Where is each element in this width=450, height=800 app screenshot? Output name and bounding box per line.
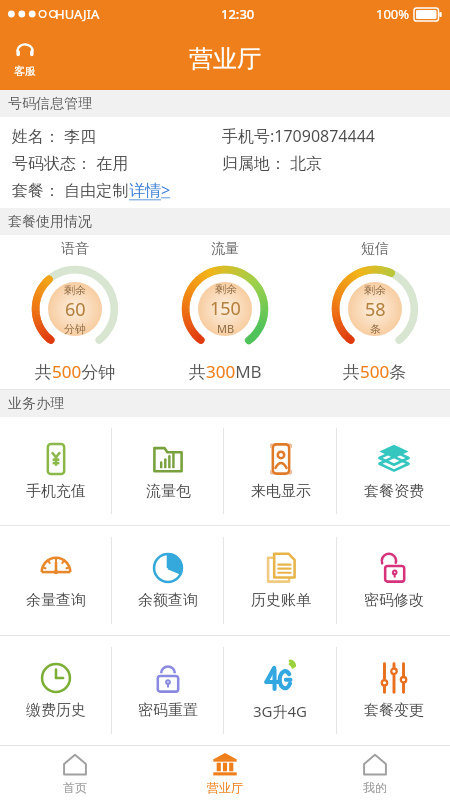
staticText: 来电显示 <box>251 482 311 501</box>
button[interactable]: 详情> <box>129 179 171 201</box>
staticText: 套餐资费 <box>364 482 424 501</box>
staticText: 余额查询 <box>138 591 198 610</box>
button[interactable]: 客服 Customer service <box>8 36 42 82</box>
staticText: 密码重置 <box>138 701 198 720</box>
staticText: 套餐变更 <box>364 701 424 720</box>
staticText: 营业厅 <box>207 780 243 795</box>
staticText: 流量 <box>211 240 239 258</box>
staticText: 号码信息管理 <box>8 95 92 113</box>
staticText: 语音 <box>61 240 89 258</box>
staticText: 分钟 <box>64 322 86 336</box>
staticText: 套餐使用情况 <box>8 213 92 231</box>
staticText: 100% <box>376 5 410 23</box>
staticText: 首页 <box>63 780 87 795</box>
button[interactable]: 首页 <box>0 746 150 800</box>
button[interactable]: 流量 <box>150 240 300 383</box>
button[interactable]: 密码重置 <box>112 636 224 745</box>
button[interactable]: 密码修改 <box>337 526 450 635</box>
staticText: 套餐： 自由定制 <box>12 179 129 201</box>
button[interactable]: 流量包 <box>112 417 224 525</box>
staticText: 流量包 <box>146 482 191 501</box>
staticText: 历史账单 <box>251 591 311 610</box>
staticText: 共300MB <box>189 360 262 383</box>
staticText: 客服 <box>14 64 36 78</box>
button[interactable]: 套餐资费 <box>337 417 450 525</box>
staticText: 共500分钟 <box>35 360 116 383</box>
staticText: 150 <box>210 296 241 321</box>
button[interactable]: 手机充值 <box>0 417 112 525</box>
staticText: 条 <box>370 322 381 336</box>
staticText: 60 <box>65 297 86 322</box>
staticText: 58 <box>365 297 386 322</box>
staticText: 手机充值 <box>26 482 86 501</box>
staticText: 业务办理 <box>8 395 64 413</box>
staticText: 3G升4G <box>253 701 308 721</box>
staticText: 余量查询 <box>26 591 86 610</box>
staticText: 剩余 <box>215 282 237 296</box>
button[interactable]: 余量查询 <box>0 526 112 635</box>
button[interactable]: 3G升4G <box>224 636 337 745</box>
button[interactable]: 语音 <box>0 240 150 383</box>
staticText: 详情> <box>129 179 171 201</box>
button[interactable]: 余额查询 <box>112 526 224 635</box>
staticText: 号码状态： 在用 <box>12 152 129 174</box>
staticText: 缴费历史 <box>26 701 86 720</box>
staticText: 营业厅 <box>189 44 261 74</box>
staticText: 剩余 <box>364 283 386 297</box>
staticText: 姓名： 李四 <box>12 125 97 147</box>
staticText: 密码修改 <box>364 591 424 610</box>
staticText: 剩余 <box>64 283 86 297</box>
button[interactable]: 营业厅 <box>150 746 300 800</box>
button[interactable]: 历史账单 <box>224 526 337 635</box>
staticText: 短信 <box>361 240 389 258</box>
staticText: 共500条 <box>343 360 407 383</box>
button[interactable]: 短信 <box>300 240 450 383</box>
staticText: MB <box>217 321 235 336</box>
staticText: 12:30 <box>221 5 255 23</box>
staticText: 我的 <box>363 780 387 795</box>
staticText: 归属地： 北京 <box>222 152 323 174</box>
button[interactable]: 套餐变更 <box>337 636 450 745</box>
button[interactable]: 来电显示 <box>224 417 337 525</box>
button[interactable]: 我的 <box>300 746 450 800</box>
button[interactable]: 缴费历史 <box>0 636 112 745</box>
staticText: 手机号:17090874444 <box>222 125 375 147</box>
staticText: HUAJIA <box>55 5 100 23</box>
